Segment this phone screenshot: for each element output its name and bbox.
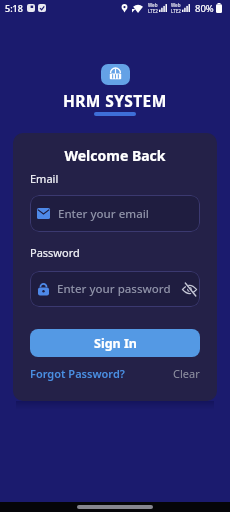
button[interactable]: Sign In bbox=[30, 329, 200, 357]
button[interactable]: Forgot Password? bbox=[30, 366, 125, 381]
staticText: Enter your email bbox=[58, 206, 149, 222]
button[interactable] bbox=[77, 505, 153, 509]
staticText: Web bbox=[148, 2, 158, 8]
button[interactable]: Enter your email bbox=[30, 195, 200, 232]
staticText: LTE2 bbox=[148, 8, 158, 14]
staticText: LTE2 bbox=[171, 8, 181, 14]
staticText: 5:18 bbox=[5, 2, 23, 14]
staticText: HRM SYSTEM bbox=[63, 90, 167, 111]
staticText: Welcome Back bbox=[30, 146, 200, 165]
staticText: Web bbox=[171, 2, 181, 8]
button[interactable]: Enter your password bbox=[30, 271, 200, 307]
staticText: Sign In bbox=[94, 335, 137, 352]
button[interactable]: Clear bbox=[173, 366, 200, 381]
staticText: Enter your password bbox=[57, 281, 171, 297]
button[interactable] bbox=[182, 283, 197, 296]
staticText: 80% bbox=[195, 2, 214, 15]
staticText: Password bbox=[30, 245, 80, 260]
staticText: Email bbox=[30, 171, 59, 186]
